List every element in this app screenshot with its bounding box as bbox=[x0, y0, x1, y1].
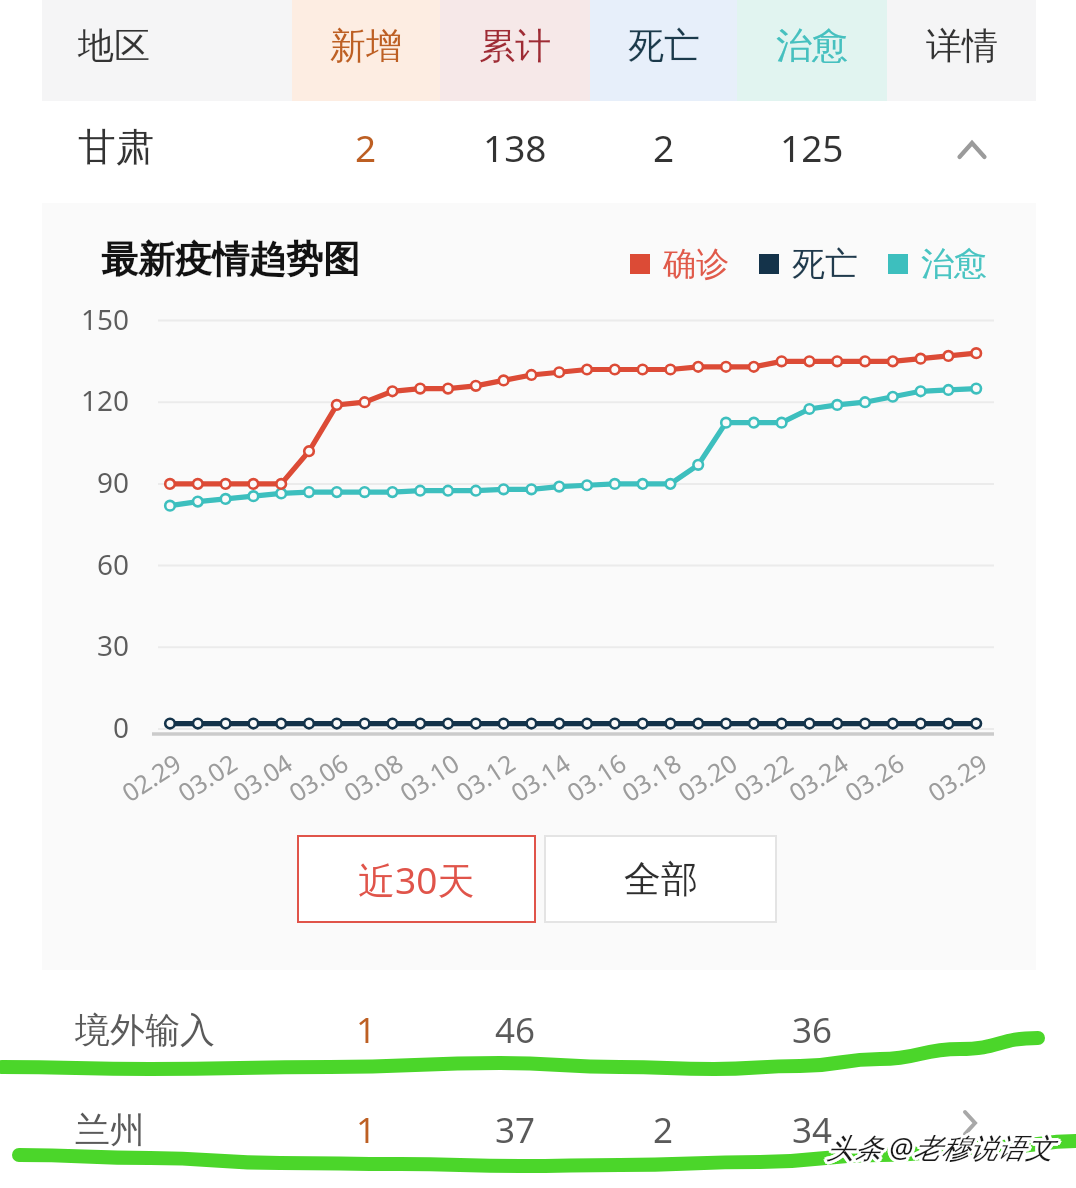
staticText: 125 bbox=[780, 122, 844, 172]
staticText: 头条 @老穆说语文 bbox=[826, 1130, 1054, 1168]
staticText: 头条 @老穆说语文 bbox=[828, 1128, 1056, 1166]
staticText: 头条 @老穆说语文 bbox=[825, 1127, 1053, 1165]
staticText: 头条 @老穆说语文 bbox=[828, 1130, 1056, 1168]
staticText: 头条 @老穆说语文 bbox=[826, 1131, 1054, 1169]
staticText: 头条 @老穆说语文 bbox=[824, 1130, 1052, 1168]
staticText: 甘肃 bbox=[78, 123, 154, 171]
staticText: 头条 @老穆说语文 bbox=[825, 1126, 1053, 1164]
staticText: 03.04 bbox=[226, 745, 298, 809]
staticText: 1 bbox=[356, 1106, 377, 1154]
staticText: 138 bbox=[483, 122, 547, 172]
staticText: 150 bbox=[81, 300, 130, 338]
staticText: 03.12 bbox=[449, 745, 521, 809]
staticText: 头条 @老穆说语文 bbox=[824, 1127, 1052, 1165]
staticText: 头条 @老穆说语文 bbox=[826, 1129, 1054, 1167]
staticText: 地区 bbox=[78, 23, 150, 68]
button[interactable]: 全部 bbox=[544, 835, 777, 923]
staticText: 34 bbox=[792, 1106, 833, 1154]
staticText: 30 bbox=[97, 626, 130, 664]
staticText: 境外输入 bbox=[75, 1008, 215, 1052]
staticText: 36 bbox=[792, 1006, 833, 1054]
button[interactable]: 甘肃 bbox=[42, 101, 1036, 198]
staticText: 头条 @老穆说语文 bbox=[823, 1128, 1051, 1166]
staticText: 37 bbox=[495, 1106, 536, 1154]
staticText: 头条 @老穆说语文 bbox=[827, 1126, 1055, 1164]
staticText: 最新疫情趋势图 bbox=[101, 236, 360, 283]
button[interactable]: 地区 bbox=[42, 0, 292, 101]
staticText: 头条 @老穆说语文 bbox=[825, 1129, 1053, 1167]
button[interactable]: 累计 bbox=[440, 0, 590, 101]
other: Details bbox=[950, 1103, 990, 1143]
staticText: 头条 @老穆说语文 bbox=[825, 1130, 1053, 1168]
staticText: 全部 bbox=[624, 856, 698, 903]
staticText: 兰州 bbox=[75, 1108, 145, 1152]
button[interactable]: 治愈 bbox=[737, 0, 887, 101]
staticText: 03.10 bbox=[393, 745, 465, 809]
staticText: 新增 bbox=[330, 23, 402, 68]
staticText: 头条 @老穆说语文 bbox=[827, 1128, 1055, 1166]
button[interactable]: 死亡 bbox=[590, 0, 737, 101]
staticText: 2 bbox=[355, 122, 377, 172]
staticText: 头条 @老穆说语文 bbox=[828, 1126, 1056, 1164]
staticText: 头条 @老穆说语文 bbox=[828, 1127, 1056, 1165]
staticText: 头条 @老穆说语文 bbox=[824, 1128, 1052, 1166]
staticText: 03.06 bbox=[282, 745, 354, 809]
staticText: 03.08 bbox=[337, 745, 409, 809]
staticText: 头条 @老穆说语文 bbox=[828, 1129, 1056, 1167]
staticText: 03.14 bbox=[504, 745, 576, 809]
staticText: 头条 @老穆说语文 bbox=[824, 1129, 1052, 1167]
staticText: 90 bbox=[97, 463, 130, 501]
staticText: 03.29 bbox=[921, 745, 993, 809]
staticText: 累计 bbox=[479, 23, 551, 68]
button[interactable]: 详情 bbox=[887, 0, 1036, 101]
staticText: 治愈 bbox=[921, 243, 987, 285]
staticText: 46 bbox=[495, 1006, 536, 1054]
button[interactable]: 近30天 bbox=[297, 835, 536, 923]
staticText: 03.26 bbox=[838, 745, 910, 809]
staticText: 2 bbox=[653, 122, 675, 172]
staticText: 头条 @老穆说语文 bbox=[827, 1127, 1055, 1165]
staticText: 详情 bbox=[926, 23, 998, 68]
staticText: 03.20 bbox=[671, 745, 743, 809]
staticText: 60 bbox=[97, 545, 130, 583]
staticText: 03.22 bbox=[727, 745, 799, 809]
staticText: 确诊 bbox=[663, 243, 729, 285]
staticText: 头条 @老穆说语文 bbox=[824, 1126, 1052, 1164]
staticText: 2 bbox=[653, 1106, 674, 1154]
staticText: 近30天 bbox=[358, 854, 475, 905]
staticText: 1 bbox=[356, 1006, 377, 1054]
staticText: 头条 @老穆说语文 bbox=[826, 1126, 1054, 1164]
staticText: 头条 @老穆说语文 bbox=[825, 1128, 1053, 1166]
staticText: 头条 @老穆说语文 bbox=[827, 1130, 1055, 1168]
staticText: 死亡 bbox=[628, 23, 700, 68]
staticText: 0 bbox=[113, 708, 130, 746]
staticText: 头条 @老穆说语文 bbox=[829, 1128, 1057, 1166]
staticText: 03.24 bbox=[782, 745, 854, 809]
other: Collapse bbox=[952, 132, 992, 172]
staticText: 03.16 bbox=[560, 745, 632, 809]
staticText: 03.02 bbox=[171, 745, 243, 809]
staticText: 头条 @老穆说语文 bbox=[826, 1127, 1054, 1165]
staticText: 02.29 bbox=[115, 745, 187, 809]
staticText: 03.18 bbox=[615, 745, 687, 809]
staticText: 120 bbox=[81, 381, 130, 419]
staticText: 头条 @老穆说语文 bbox=[826, 1125, 1054, 1163]
staticText: 头条 @老穆说语文 bbox=[826, 1128, 1054, 1166]
staticText: 头条 @老穆说语文 bbox=[827, 1129, 1055, 1167]
button[interactable]: 新增 bbox=[292, 0, 440, 101]
button[interactable]: 境外输入 bbox=[42, 985, 1036, 1079]
button[interactable]: 兰州 bbox=[42, 1085, 1036, 1179]
staticText: 头条 @老穆说语文 bbox=[826, 1128, 1054, 1166]
staticText: 死亡 bbox=[792, 243, 858, 285]
staticText: 治愈 bbox=[776, 23, 848, 68]
